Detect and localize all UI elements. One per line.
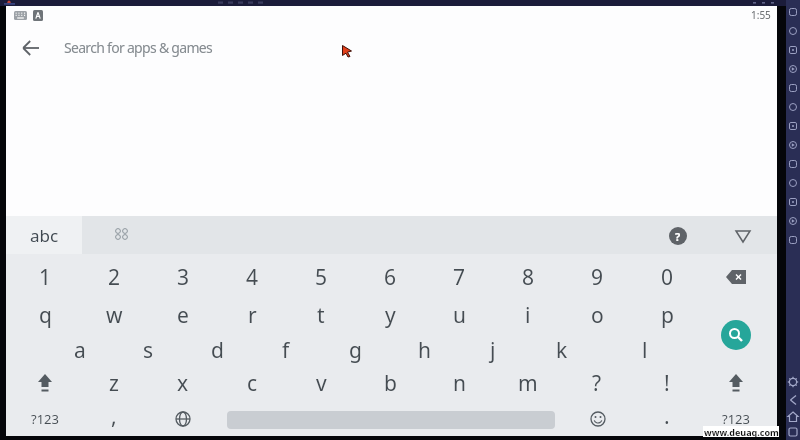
button[interactable]: 5 xyxy=(291,262,351,292)
button[interactable] xyxy=(786,79,800,97)
button[interactable] xyxy=(786,155,800,173)
button[interactable] xyxy=(734,227,752,245)
button[interactable]: f xyxy=(256,335,316,365)
button[interactable]: s xyxy=(118,335,178,365)
button[interactable] xyxy=(786,373,800,391)
staticText: o xyxy=(591,301,604,330)
button[interactable]: p xyxy=(637,300,697,330)
button[interactable]: 9 xyxy=(567,262,627,292)
staticText: j xyxy=(490,336,496,365)
button[interactable]: 6 xyxy=(360,262,420,292)
button[interactable]: u xyxy=(429,300,489,330)
staticText: l xyxy=(642,336,648,365)
staticText: y xyxy=(385,301,396,330)
button[interactable]: x xyxy=(153,368,213,398)
button[interactable] xyxy=(786,98,800,116)
button[interactable]: r xyxy=(222,300,282,330)
button[interactable]: i xyxy=(498,300,558,330)
button[interactable]: ?123 xyxy=(706,404,766,434)
button[interactable]: ? xyxy=(567,368,627,398)
button[interactable]: ! xyxy=(637,368,697,398)
staticText: e xyxy=(177,301,189,330)
staticText: h xyxy=(418,336,431,365)
staticText: b xyxy=(384,369,397,398)
button[interactable] xyxy=(786,60,800,78)
button[interactable]: c xyxy=(222,368,282,398)
button[interactable]: 4 xyxy=(222,262,282,292)
button[interactable]: l xyxy=(615,335,675,365)
staticText: n xyxy=(453,369,466,398)
staticText: 9 xyxy=(591,263,604,292)
button[interactable]: w xyxy=(84,300,144,330)
button[interactable]: v xyxy=(291,368,351,398)
button[interactable]: j xyxy=(463,335,523,365)
staticText: abc xyxy=(30,224,59,247)
staticText: i xyxy=(525,301,531,330)
button[interactable] xyxy=(786,212,800,230)
button[interactable]: a xyxy=(50,335,110,365)
staticText: ? xyxy=(592,369,602,398)
button[interactable]: y xyxy=(360,300,420,330)
staticText: , xyxy=(111,402,117,431)
staticText: d xyxy=(211,336,224,365)
button[interactable] xyxy=(721,320,751,350)
button[interactable] xyxy=(786,425,800,440)
button[interactable]: , xyxy=(84,401,144,431)
staticText: m xyxy=(518,369,538,398)
button[interactable]: t xyxy=(291,300,351,330)
button[interactable]: g xyxy=(325,335,385,365)
button[interactable] xyxy=(786,231,800,249)
button[interactable]: abc xyxy=(6,216,82,254)
button[interactable] xyxy=(718,368,754,398)
button[interactable]: b xyxy=(360,368,420,398)
staticText: 5 xyxy=(315,263,328,292)
staticText: 3 xyxy=(177,263,190,292)
staticText: p xyxy=(661,301,674,330)
button[interactable]: h xyxy=(394,335,454,365)
button[interactable] xyxy=(582,403,614,435)
staticText: w xyxy=(106,301,123,330)
button[interactable]: 1 xyxy=(15,262,75,292)
staticText: a xyxy=(74,336,86,365)
button[interactable]: n xyxy=(429,368,489,398)
button[interactable]: o xyxy=(567,300,627,330)
button[interactable]: 0 xyxy=(637,262,697,292)
staticText: 1:55 xyxy=(751,8,771,22)
staticText: . xyxy=(664,402,670,431)
button[interactable] xyxy=(27,368,63,398)
button[interactable]: z xyxy=(84,368,144,398)
button[interactable]: m xyxy=(498,368,558,398)
button[interactable]: ?123 xyxy=(15,404,75,434)
button[interactable] xyxy=(100,216,144,254)
button[interactable] xyxy=(786,391,800,409)
button[interactable]: q xyxy=(15,300,75,330)
button[interactable]: Search for apps & games xyxy=(6,26,777,70)
button[interactable] xyxy=(786,193,800,211)
button[interactable] xyxy=(718,262,754,292)
staticText: v xyxy=(316,369,327,398)
button[interactable]: 8 xyxy=(498,262,558,292)
button[interactable]: 7 xyxy=(429,262,489,292)
staticText: 0 xyxy=(661,263,674,292)
button[interactable]: ? xyxy=(669,227,687,245)
button[interactable] xyxy=(786,136,800,154)
button[interactable] xyxy=(786,3,800,21)
button[interactable]: 3 xyxy=(153,262,213,292)
button[interactable] xyxy=(786,22,800,40)
button[interactable] xyxy=(786,41,800,59)
button[interactable] xyxy=(786,117,800,135)
button[interactable] xyxy=(786,174,800,192)
staticText: ? xyxy=(675,229,681,244)
button[interactable]: . xyxy=(637,401,697,431)
button[interactable]: d xyxy=(187,335,247,365)
button[interactable]: e xyxy=(153,300,213,330)
staticText: 2 xyxy=(108,263,121,292)
button[interactable] xyxy=(786,408,800,426)
staticText: x xyxy=(177,369,189,398)
button[interactable] xyxy=(167,403,199,435)
button[interactable]: 2 xyxy=(84,262,144,292)
staticText: q xyxy=(39,301,52,330)
button[interactable]: k xyxy=(532,335,592,365)
staticText: k xyxy=(556,336,568,365)
